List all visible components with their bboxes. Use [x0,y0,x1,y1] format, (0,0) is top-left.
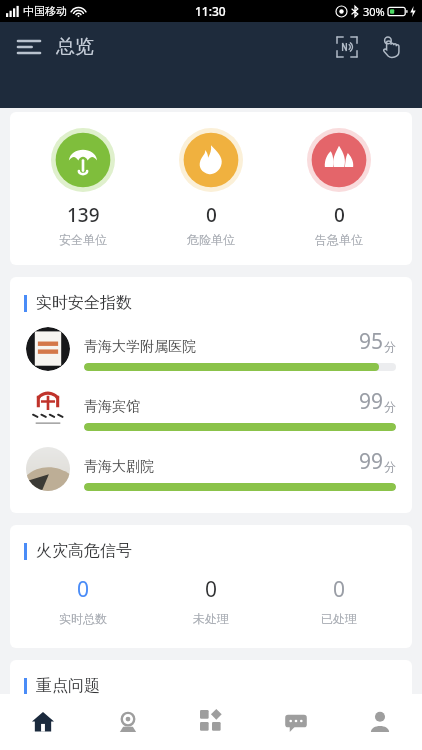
button[interactable]: 0 [28,575,138,626]
button[interactable]: 0 [156,575,266,626]
staticText: 0 [77,575,90,604]
staticText: 已处理 [321,611,357,626]
staticText: 99 [359,447,384,476]
staticText: 0 [206,202,217,228]
button[interactable]: Touch inspect [374,30,408,64]
button[interactable]: 139 [28,128,138,247]
staticText: 30% [363,4,385,19]
button[interactable]: Profile [338,694,422,750]
button[interactable]: Monitor [85,694,170,750]
staticText: 0 [334,202,345,228]
button[interactable]: 青海大剧院 [10,439,412,499]
staticText: 火灾高危信号 [36,541,132,561]
button[interactable]: Apps [170,694,254,750]
staticText: 重点问题 [36,676,100,696]
staticText: 未处理 [193,611,229,626]
staticText: 分 [384,339,396,354]
button[interactable]: Home [0,694,85,750]
staticText: 总览 [56,35,94,59]
staticText: 青海宾馆 [84,398,140,416]
button[interactable]: NFC scan [330,30,364,64]
staticText: 实时安全指数 [36,293,132,313]
staticText: 实时总数 [59,611,107,626]
staticText: 分 [384,459,396,474]
button[interactable]: Menu [14,32,44,62]
staticText: 危险单位 [187,232,235,247]
button[interactable]: 青海宾馆 [10,379,412,439]
staticText: 分 [384,399,396,414]
staticText: 11:30 [195,3,226,19]
button[interactable]: 0 [284,575,394,626]
button[interactable]: 0 [156,128,266,247]
staticText: 青海大剧院 [84,458,154,476]
staticText: 139 [67,202,100,228]
button[interactable]: 0 [284,128,394,247]
staticText: 95 [359,327,384,356]
staticText: 0 [333,575,346,604]
button[interactable]: 青海大学附属医院 [10,319,412,379]
staticText: 告急单位 [315,232,363,247]
staticText: 中国移动 [23,4,67,18]
staticText: 青海大学附属医院 [84,338,196,356]
staticText: 99 [359,387,384,416]
staticText: 安全单位 [59,232,107,247]
button[interactable]: Messages [254,694,338,750]
staticText: 0 [205,575,218,604]
